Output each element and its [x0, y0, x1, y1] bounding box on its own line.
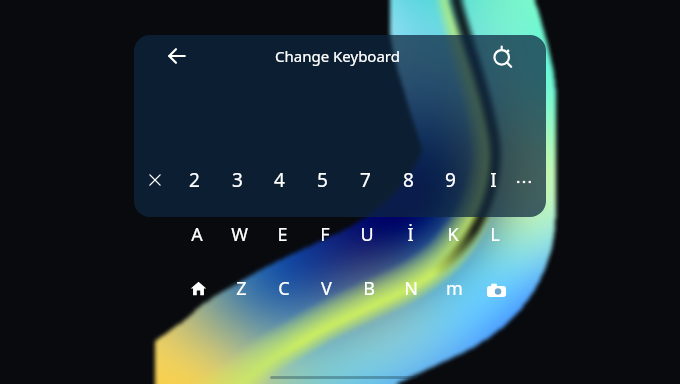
button[interactable]: I — [477, 166, 509, 194]
button[interactable]: More options — [516, 174, 532, 190]
staticText: F — [320, 222, 330, 247]
staticText: 4 — [274, 167, 285, 193]
button[interactable]: İ — [394, 220, 426, 248]
staticText: 5 — [317, 167, 328, 193]
button[interactable]: Camera — [487, 281, 506, 300]
staticText: N — [404, 276, 418, 301]
button[interactable]: 7 — [349, 166, 381, 194]
staticText: m — [446, 276, 463, 301]
button[interactable]: 4 — [263, 166, 295, 194]
button[interactable]: F — [309, 220, 341, 248]
button[interactable]: E — [266, 220, 298, 248]
staticText: 9 — [445, 167, 456, 193]
staticText: Z — [236, 276, 247, 301]
button[interactable]: 3 — [221, 166, 253, 194]
button[interactable]: V — [310, 274, 342, 302]
staticText: Change Keyboard — [260, 46, 415, 66]
staticText: E — [277, 222, 288, 247]
staticText: L — [490, 222, 500, 247]
staticText: I — [490, 167, 497, 193]
staticText: B — [363, 276, 375, 301]
staticText: 8 — [403, 167, 414, 193]
button[interactable]: Close — [147, 172, 163, 188]
staticText: 7 — [360, 167, 371, 193]
staticText: İ — [407, 222, 414, 247]
button[interactable]: W — [223, 220, 255, 248]
button[interactable]: m — [438, 274, 470, 302]
button[interactable]: Z — [225, 274, 257, 302]
staticText: 2 — [189, 167, 200, 193]
staticText: K — [447, 222, 459, 247]
button[interactable]: 9 — [434, 166, 466, 194]
button[interactable]: N — [395, 274, 427, 302]
button[interactable]: U — [351, 220, 383, 248]
button[interactable]: Back — [164, 43, 190, 69]
button[interactable]: 8 — [392, 166, 424, 194]
button[interactable]: B — [353, 274, 385, 302]
button[interactable]: A — [181, 220, 213, 248]
staticText: U — [360, 222, 374, 247]
staticText: C — [278, 276, 290, 301]
staticText: 3 — [232, 167, 243, 193]
button[interactable]: Home — [190, 280, 207, 297]
staticText: W — [231, 222, 248, 247]
staticText: V — [321, 276, 332, 301]
button[interactable]: 2 — [178, 166, 210, 194]
button[interactable]: L — [479, 220, 511, 248]
button[interactable]: K — [437, 220, 469, 248]
button[interactable]: Search — [490, 43, 516, 69]
button[interactable]: 5 — [306, 166, 338, 194]
staticText: A — [191, 222, 203, 247]
button[interactable]: C — [268, 274, 300, 302]
